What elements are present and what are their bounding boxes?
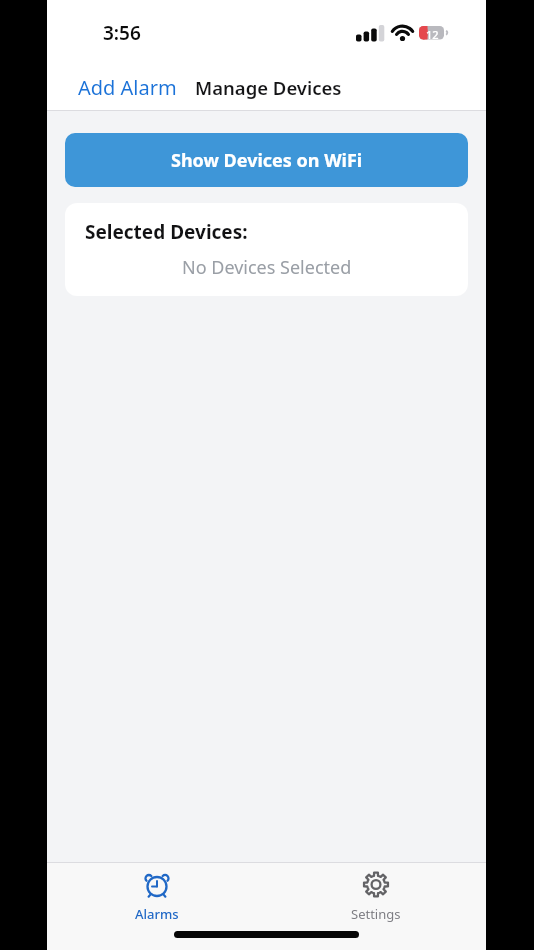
button[interactable]: Alarms <box>47 863 266 923</box>
staticText: 12 <box>426 27 439 42</box>
staticText: Settings <box>351 905 401 923</box>
staticText: Add Alarm <box>78 74 177 101</box>
staticText: 3:56 <box>103 20 141 46</box>
button[interactable]: Settings <box>266 863 486 923</box>
button[interactable]: Selected Devices: <box>65 203 468 296</box>
button[interactable]: Manage Devices <box>195 75 342 100</box>
staticText: Manage Devices <box>195 75 342 100</box>
staticText: Show Devices on WiFi <box>171 148 363 173</box>
staticText: No Devices Selected <box>182 255 352 280</box>
staticText: Selected Devices: <box>85 219 248 245</box>
button[interactable]: Add Alarm <box>78 74 177 101</box>
button[interactable]: Show Devices on WiFi <box>65 133 468 187</box>
staticText: Alarms <box>135 905 179 923</box>
